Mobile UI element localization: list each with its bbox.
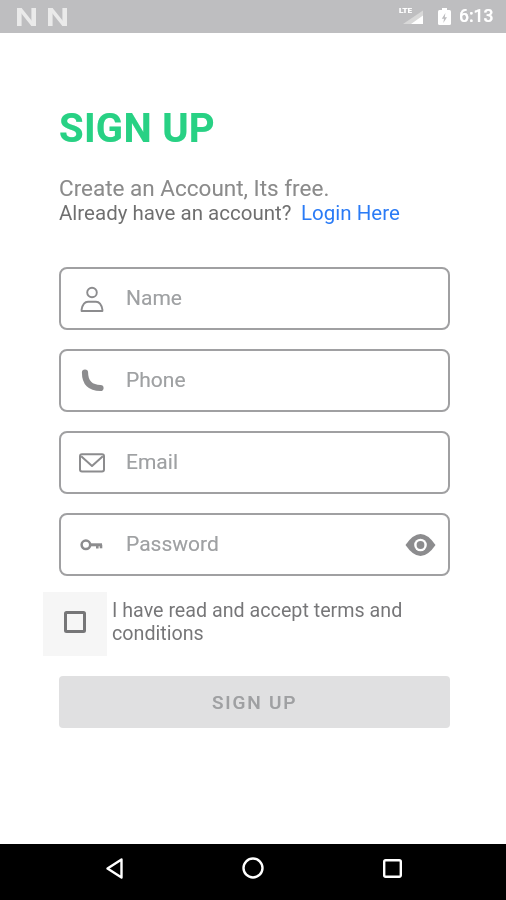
button[interactable]: Email	[59, 431, 450, 494]
button[interactable]	[383, 859, 402, 878]
staticText: 6:13	[459, 6, 494, 27]
staticText: SIGN UP	[59, 105, 215, 152]
button[interactable]: Password	[59, 513, 450, 576]
staticText: Name	[126, 286, 182, 311]
button[interactable]	[106, 858, 123, 879]
staticText: Email	[126, 450, 178, 475]
button[interactable]	[405, 533, 436, 557]
button[interactable]: Phone	[59, 349, 450, 412]
button[interactable]: I have read and accept terms and conditi…	[43, 592, 403, 656]
staticText: SIGN UP	[212, 691, 298, 713]
button[interactable]: SIGN UP	[59, 676, 450, 728]
staticText: I have read and accept terms and conditi…	[112, 599, 403, 645]
button[interactable]: Login Here	[301, 201, 400, 225]
button[interactable]: Name	[59, 267, 450, 330]
staticText: Password	[126, 532, 219, 557]
staticText: Already have an account?	[59, 201, 292, 225]
staticText: Create an Account, Its free.	[59, 175, 330, 201]
staticText: Phone	[126, 368, 186, 393]
button[interactable]	[242, 857, 264, 879]
staticText: LTE	[399, 6, 412, 15]
